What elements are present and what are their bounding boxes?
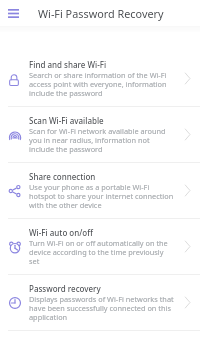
staticText: Wi-Fi Password Recovery <box>38 6 164 21</box>
button[interactable]: Password recovery <box>0 275 200 330</box>
button[interactable]: Open navigation menu <box>0 0 26 26</box>
staticText: Password recovery <box>29 283 101 294</box>
staticText: Displays passwords of Wi-Fi networks tha… <box>29 294 175 322</box>
staticText: Wi-Fi auto on/off <box>29 227 93 238</box>
staticText: Scan Wi-Fi available <box>29 115 104 126</box>
button[interactable]: Share connection <box>0 163 200 218</box>
button[interactable]: Find and share Wi-Fi <box>0 51 200 106</box>
staticText: Scan for Wi-Fi network available around … <box>29 126 175 154</box>
staticText: Share connection <box>29 171 96 182</box>
staticText: Find and share Wi-Fi <box>29 59 107 70</box>
staticText: Search or share information of the Wi-Fi… <box>29 70 175 98</box>
button[interactable]: Wi-Fi auto on/off <box>0 219 200 274</box>
staticText: Turn Wi-Fi on or off automatically on th… <box>29 238 175 266</box>
button[interactable]: Scan Wi-Fi available <box>0 107 200 162</box>
staticText: Use your phone as a portable Wi-Fi hotsp… <box>29 182 175 210</box>
